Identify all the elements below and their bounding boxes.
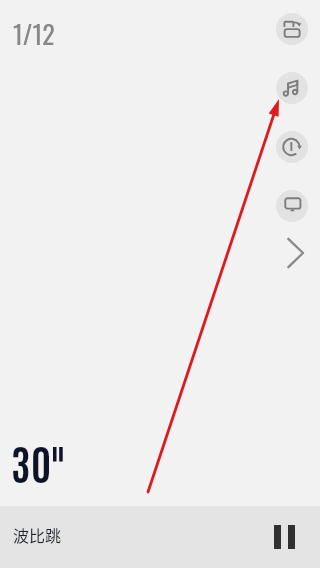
- button[interactable]: Cast to screen: [276, 190, 308, 222]
- button[interactable]: Next exercise: [276, 235, 308, 271]
- staticText: 1/12: [13, 14, 55, 53]
- button[interactable]: Pause: [264, 517, 304, 557]
- staticText: 波比跳: [13, 523, 62, 546]
- button[interactable]: Rotate screen: [276, 13, 308, 45]
- button[interactable]: Restart exercise: [276, 131, 308, 163]
- button[interactable]: Music: [276, 72, 308, 104]
- staticText: 30: [11, 436, 52, 489]
